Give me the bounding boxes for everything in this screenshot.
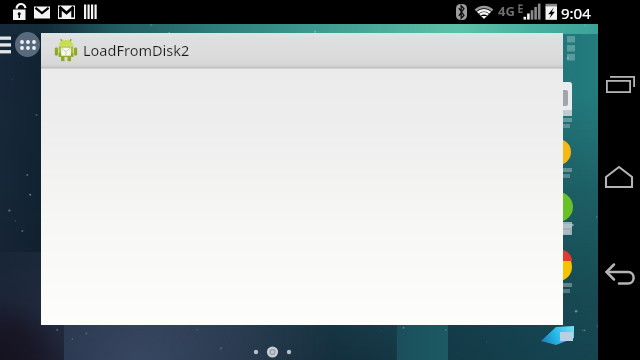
button[interactable]: LoadFromDisk2: [41, 33, 563, 67]
staticText: 4G: [498, 2, 515, 20]
button[interactable]: Home: [598, 155, 640, 197]
staticText: 9:04: [561, 3, 591, 23]
button[interactable]: Back: [598, 250, 640, 292]
button[interactable]: Apps: [15, 32, 40, 57]
staticText: LoadFromDisk2: [83, 40, 190, 60]
button[interactable]: Recent apps: [598, 60, 640, 102]
